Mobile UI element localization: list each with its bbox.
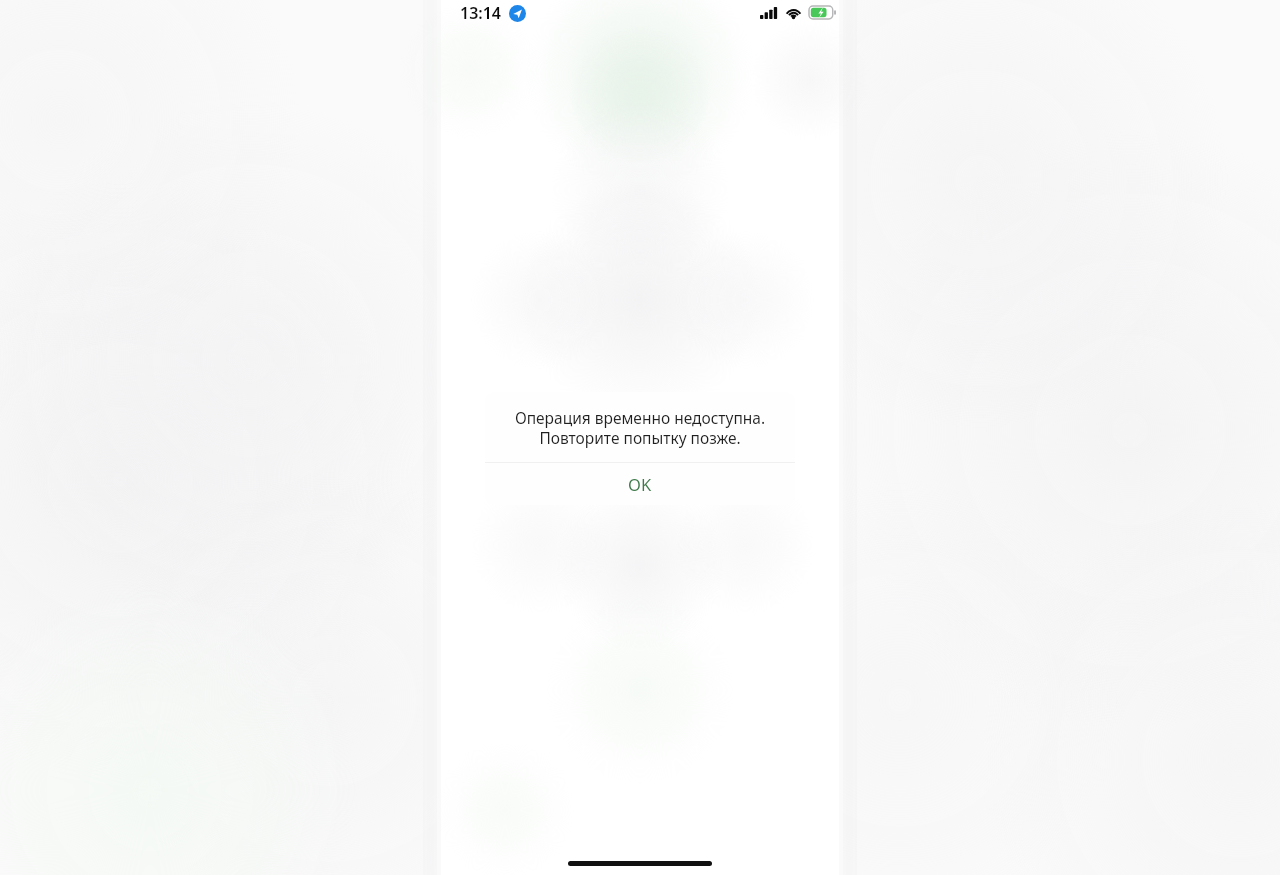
staticText: Операция временно недоступна. Повторите … [495, 407, 785, 448]
staticText: OK [628, 473, 652, 495]
button[interactable]: OK [485, 463, 795, 505]
staticText: 13:14 [460, 2, 502, 24]
other: Battery charging [809, 6, 836, 19]
other: Cellular signal [760, 7, 778, 19]
other: Wi-Fi [785, 6, 802, 19]
other: Location active [509, 5, 526, 22]
